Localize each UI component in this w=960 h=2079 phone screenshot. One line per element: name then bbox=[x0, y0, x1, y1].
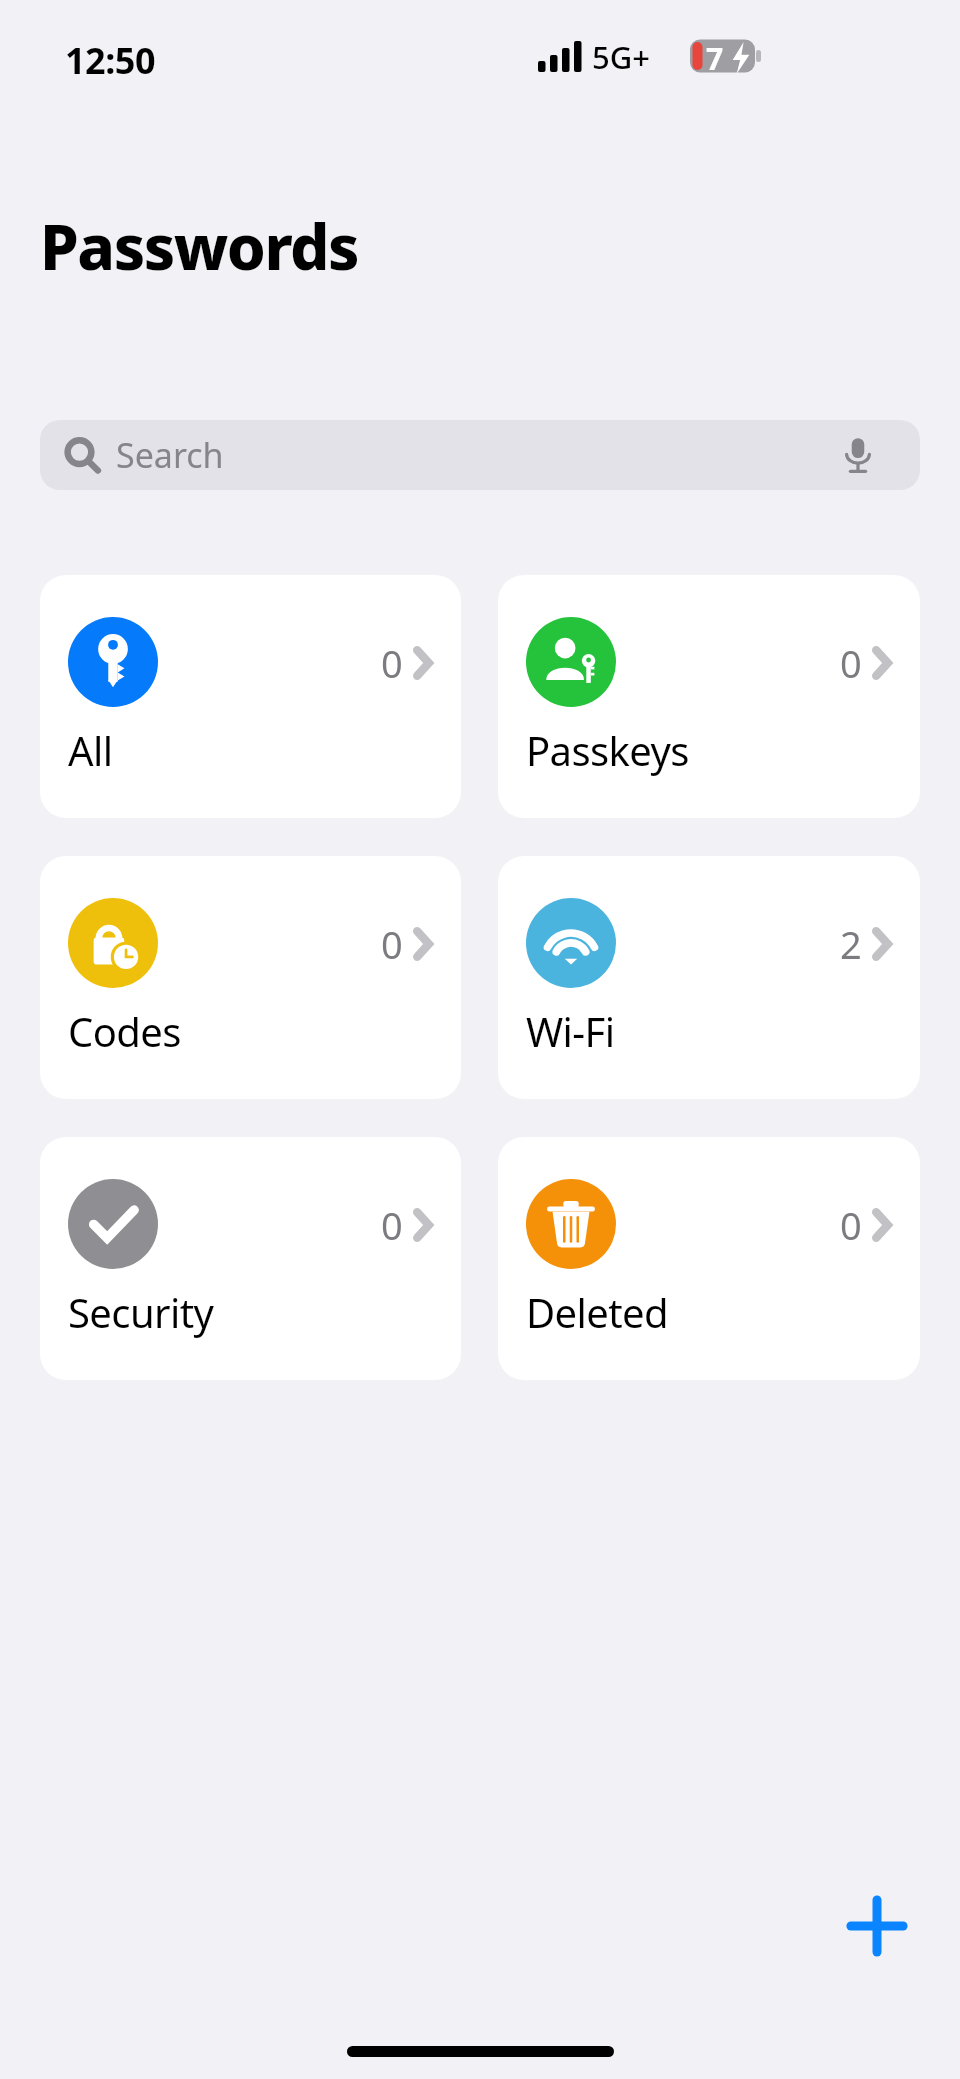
button[interactable]: 0 bbox=[498, 575, 920, 818]
staticText: Wi-Fi bbox=[526, 1004, 615, 1058]
staticText: Deleted bbox=[526, 1285, 669, 1339]
staticText: Passwords bbox=[40, 204, 359, 288]
staticText: 0 bbox=[381, 1199, 403, 1251]
button[interactable]: Search bbox=[40, 420, 920, 490]
staticText: 0 bbox=[381, 637, 403, 689]
staticText: Security bbox=[68, 1285, 214, 1339]
staticText: 7 bbox=[706, 38, 724, 79]
staticText: All bbox=[68, 723, 113, 777]
staticText: 0 bbox=[381, 918, 403, 970]
button[interactable]: 0 bbox=[40, 575, 461, 818]
button[interactable]: 0 bbox=[40, 856, 461, 1099]
button[interactable]: 0 bbox=[40, 1137, 461, 1380]
button[interactable]: 0 bbox=[498, 1137, 920, 1380]
staticText: 0 bbox=[840, 637, 862, 689]
staticText: 0 bbox=[840, 1199, 862, 1251]
staticText: 5G+ bbox=[592, 36, 651, 78]
button[interactable]: 2 bbox=[498, 856, 920, 1099]
staticText: 2 bbox=[840, 918, 862, 970]
button[interactable]: Add password bbox=[805, 1854, 949, 1998]
button[interactable]: Voice search bbox=[836, 433, 880, 477]
staticText: Passkeys bbox=[526, 723, 689, 777]
staticText: Search bbox=[116, 432, 224, 478]
staticText: Codes bbox=[68, 1004, 181, 1058]
staticText: 12:50 bbox=[65, 36, 155, 85]
